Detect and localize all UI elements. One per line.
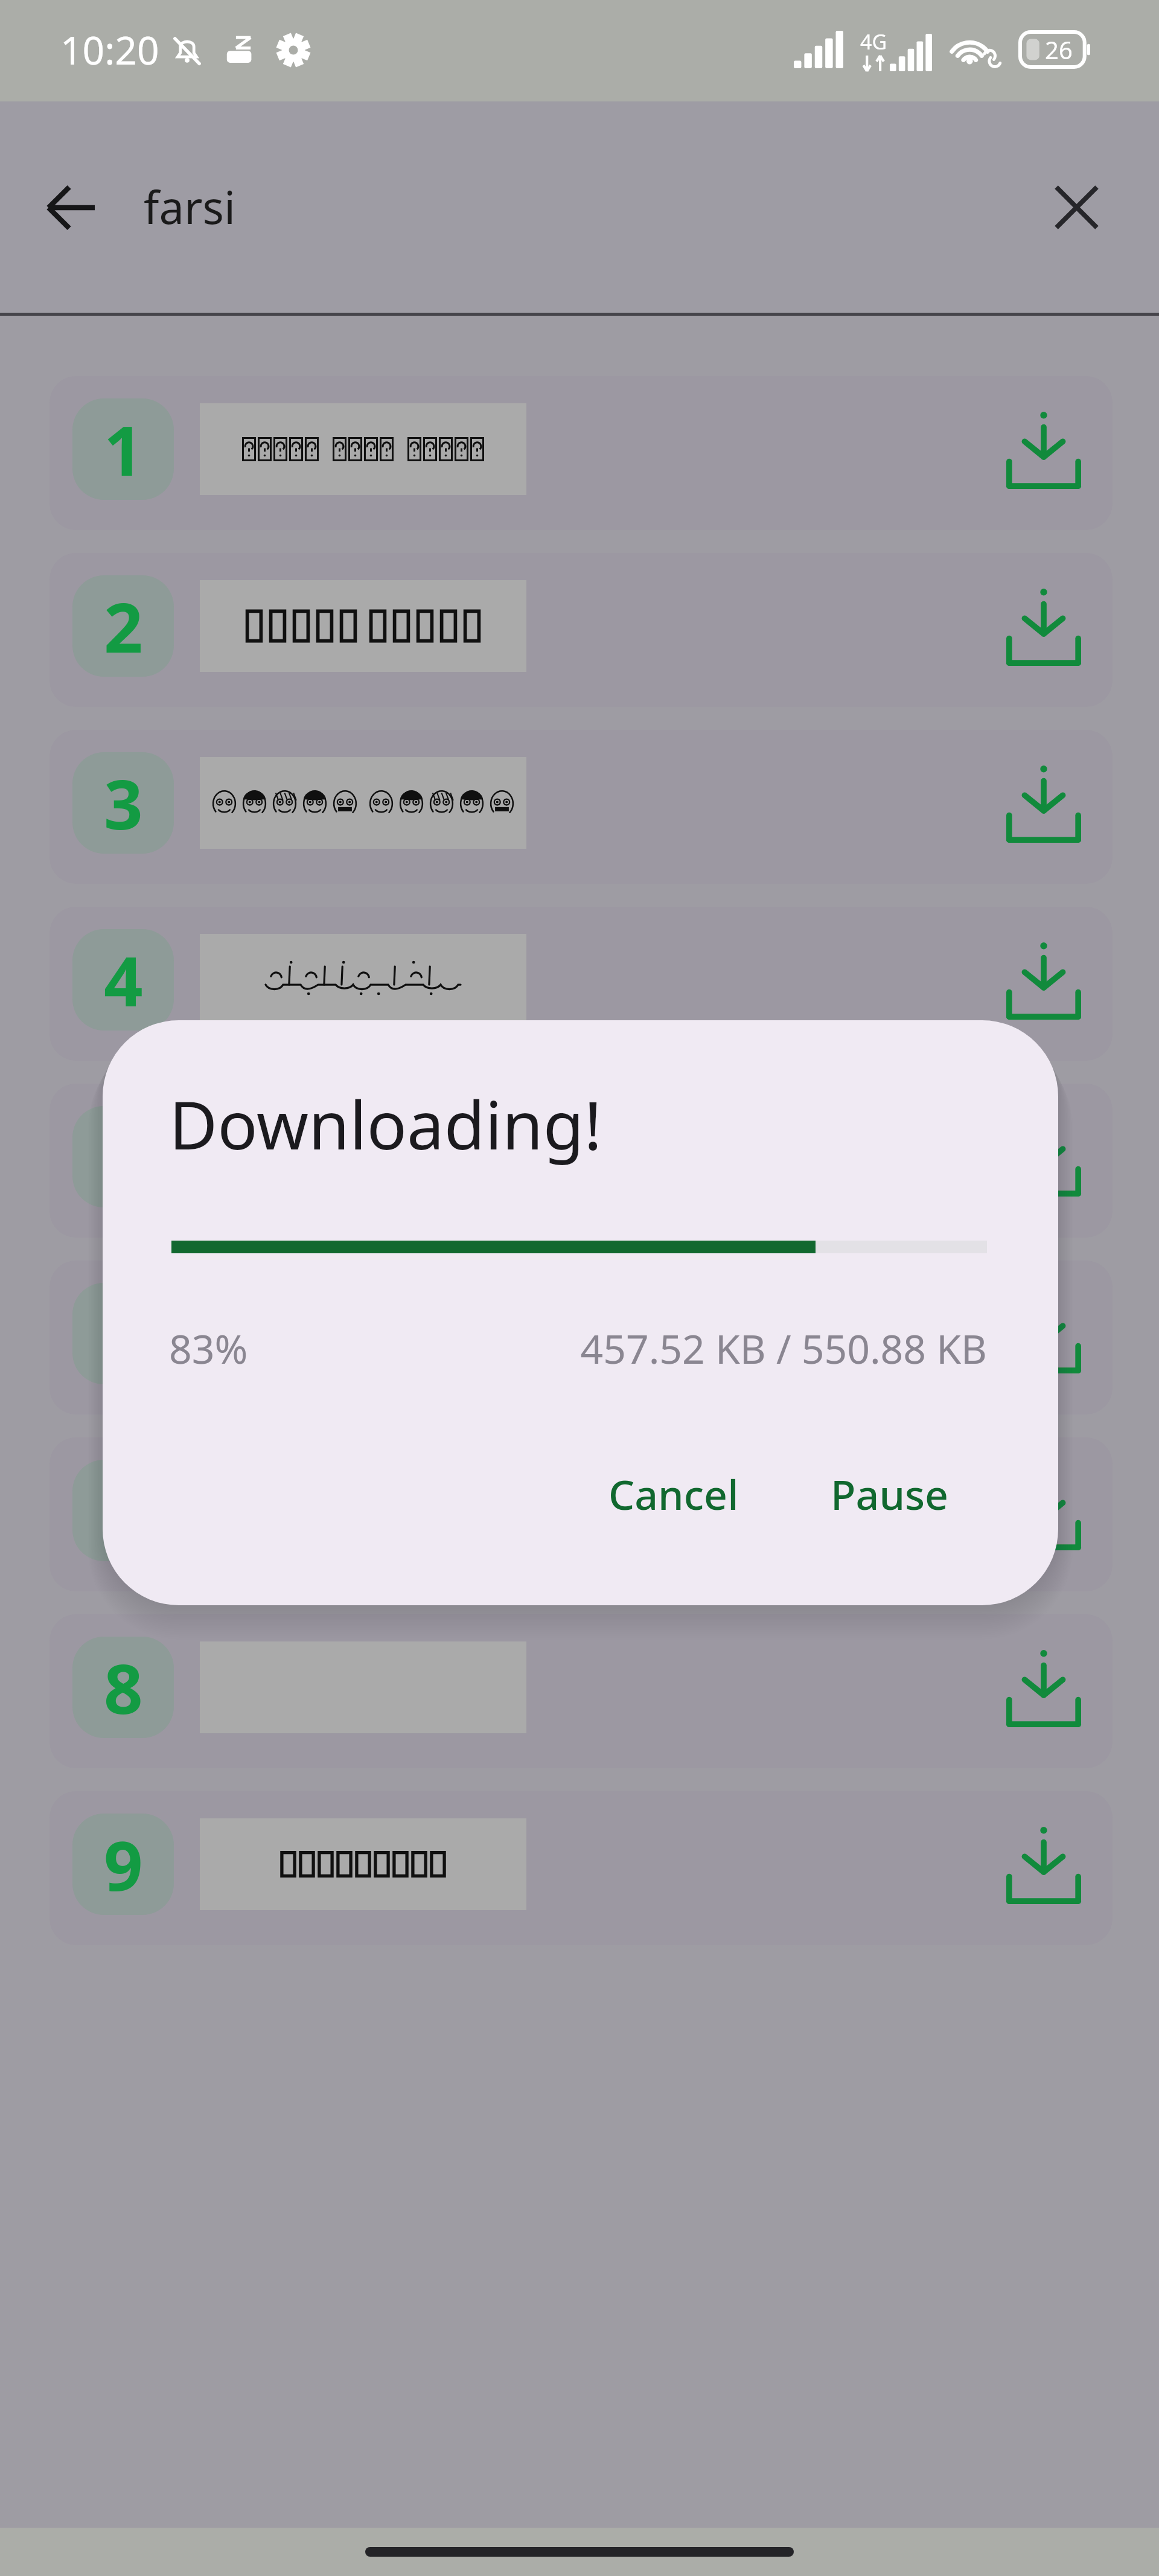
staticText: 457.52 KB / 550.88 KB xyxy=(504,1321,987,1375)
button[interactable]: Download xyxy=(991,1105,1097,1211)
button[interactable]: Download xyxy=(991,574,1097,680)
button[interactable]: Home xyxy=(365,2547,794,2557)
button[interactable]: Clear search xyxy=(1040,171,1113,243)
staticText: 8 xyxy=(104,1641,143,1734)
button[interactable]: 1 xyxy=(49,376,1113,530)
staticText: 10:20 xyxy=(60,24,159,76)
staticText: 2 xyxy=(104,580,143,673)
button[interactable]: 7 xyxy=(49,1437,1113,1591)
button[interactable]: Download xyxy=(991,397,1097,503)
button[interactable]: Download xyxy=(991,1812,1097,1919)
staticText: 1 xyxy=(104,403,143,496)
staticText: 9 xyxy=(104,1818,143,1911)
button[interactable]: Pause xyxy=(814,1454,966,1534)
button[interactable]: Download xyxy=(991,1459,1097,1565)
button[interactable]: 8 xyxy=(49,1614,1113,1768)
button[interactable]: 3 xyxy=(49,730,1113,884)
staticText: 26 xyxy=(1045,33,1073,66)
staticText: 83% xyxy=(169,1321,248,1375)
staticText: 3 xyxy=(104,756,143,849)
staticText: 4 xyxy=(104,933,143,1026)
button[interactable]: Back xyxy=(34,171,107,244)
button[interactable]: Cancel xyxy=(592,1454,756,1534)
button[interactable]: Download xyxy=(991,928,1097,1034)
button[interactable]: Download xyxy=(991,1635,1097,1742)
staticText: farsi xyxy=(144,176,236,237)
staticText: 4G xyxy=(860,28,887,56)
button[interactable]: Download xyxy=(991,1282,1097,1388)
staticText: Cancel xyxy=(608,1466,739,1522)
button[interactable]: 9 xyxy=(49,1791,1113,1945)
button[interactable]: 2 xyxy=(49,553,1113,707)
button[interactable]: Download xyxy=(991,751,1097,857)
button[interactable]: 5 xyxy=(49,1084,1113,1238)
staticText: Pause xyxy=(831,1466,949,1522)
staticText: 7 xyxy=(104,1464,143,1557)
staticText: Downloading! xyxy=(169,1078,602,1169)
button[interactable]: 6 xyxy=(49,1261,1113,1414)
button[interactable]: 4 xyxy=(49,907,1113,1061)
